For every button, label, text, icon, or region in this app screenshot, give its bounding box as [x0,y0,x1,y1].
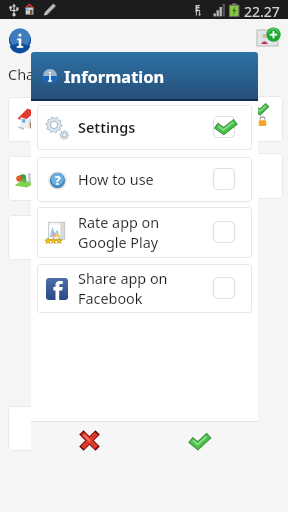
button[interactable]: OK [144,422,258,458]
staticText: Google Play [78,233,159,253]
staticText: Chat [8,64,40,84]
staticText: Share app on [78,269,168,289]
staticText: ? [55,173,61,189]
staticText: Information [64,65,165,87]
button[interactable]: Settings [37,105,252,150]
staticText: E [195,1,201,13]
staticText: Rate app on [78,213,160,233]
button[interactable]: Rate app on [37,207,252,258]
button[interactable]: ? [37,157,252,202]
staticText: Settings [78,118,136,138]
button[interactable]: Share app on [37,264,252,313]
staticText: 22.27 [244,2,280,21]
button[interactable]: Cancel [31,422,144,458]
staticText: How to use [78,170,154,190]
staticText: Facebook [78,289,143,309]
